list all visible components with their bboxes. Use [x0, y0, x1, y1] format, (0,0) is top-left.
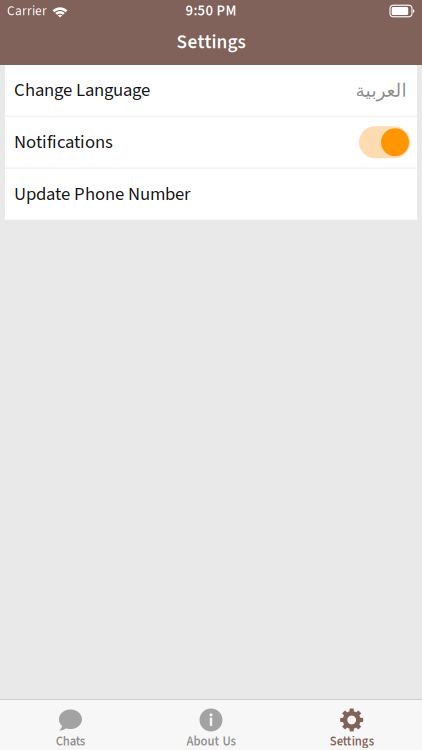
staticText: Chats — [56, 732, 85, 750]
staticText: العربية — [355, 79, 406, 101]
staticText: Notifications — [14, 129, 113, 156]
button[interactable]: Chats — [0, 700, 141, 750]
button[interactable]: Settings — [281, 700, 422, 750]
staticText: Settings — [330, 732, 374, 750]
button[interactable]: Update Phone Number — [5, 169, 417, 219]
button[interactable]: Change Language — [5, 65, 417, 115]
staticText: Settings — [176, 28, 245, 56]
staticText: Update Phone Number — [14, 181, 190, 208]
button[interactable]: Notifications — [5, 117, 417, 167]
staticText: Carrier — [7, 1, 47, 20]
staticText: About Us — [186, 732, 235, 750]
staticText: Change Language — [14, 77, 150, 104]
button[interactable]: About Us — [141, 700, 281, 750]
staticText: 9:50 PM — [185, 1, 236, 21]
